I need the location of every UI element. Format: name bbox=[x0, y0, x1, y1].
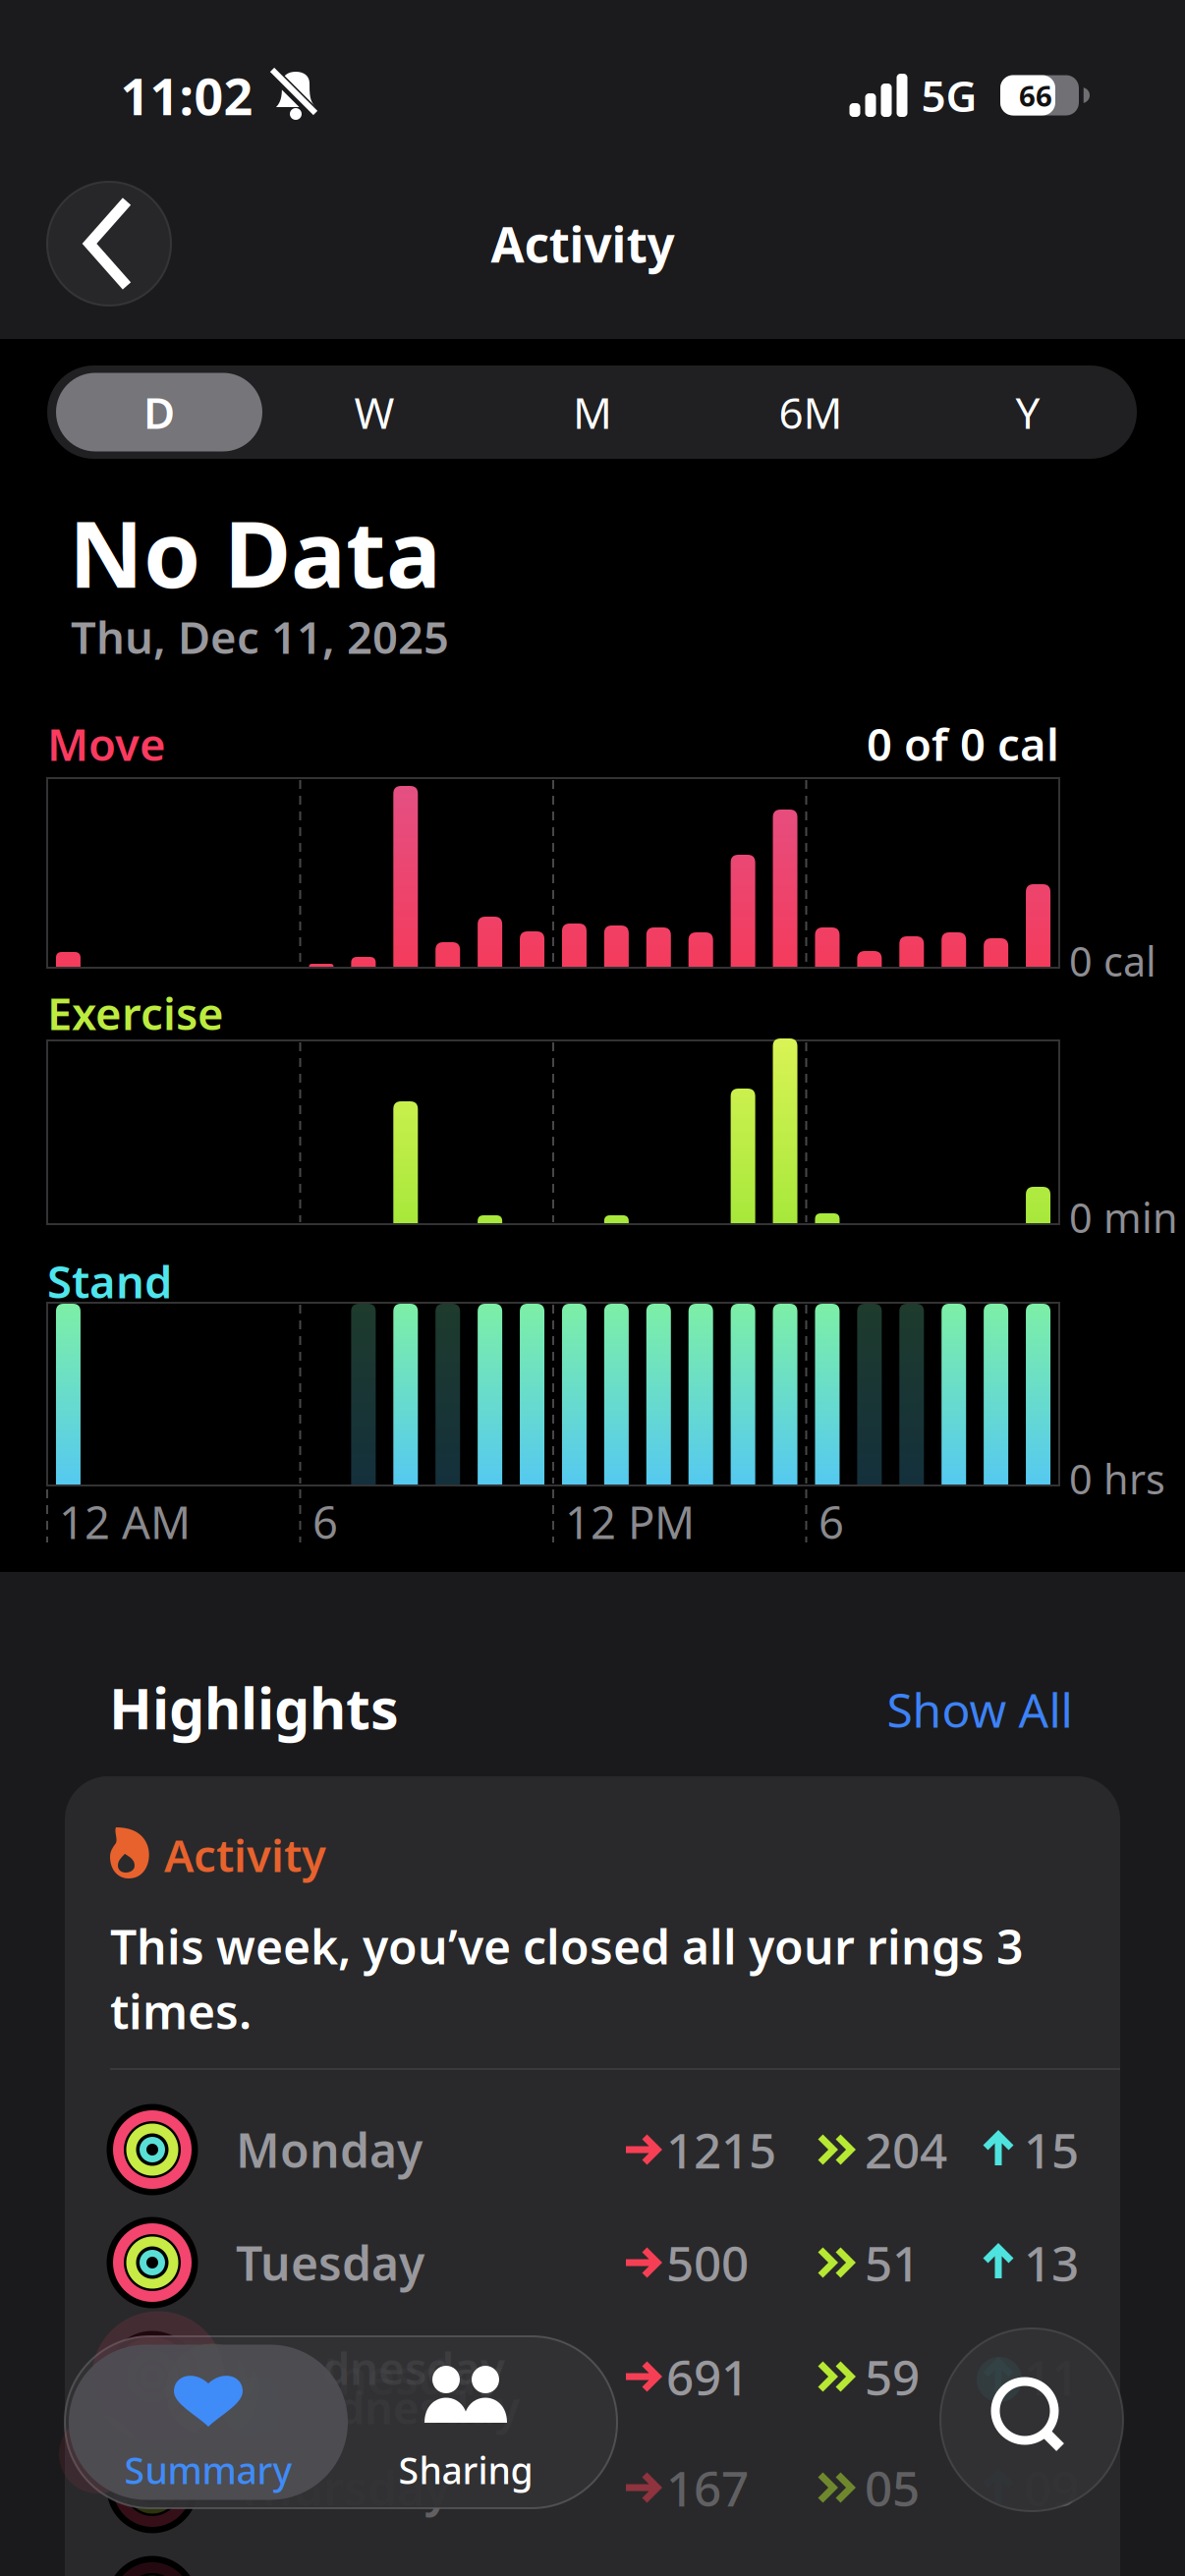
staticText: D bbox=[143, 383, 175, 441]
button[interactable]: Search bbox=[940, 2328, 1123, 2511]
staticText: This week, you’ve closed all your rings … bbox=[110, 1915, 1023, 1977]
staticText: dnesday bbox=[322, 2338, 505, 2397]
staticText: Thu, Dec 11, 2025 bbox=[71, 607, 449, 666]
button[interactable]: D bbox=[56, 373, 262, 451]
staticText: 59 bbox=[865, 2344, 920, 2409]
staticText: Move bbox=[47, 714, 166, 773]
staticText: Highlights bbox=[109, 1670, 399, 1745]
button[interactable]: M bbox=[489, 368, 696, 456]
button[interactable]: Show All bbox=[887, 1678, 1072, 1741]
button[interactable]: W bbox=[271, 368, 478, 456]
staticText: 6 bbox=[818, 1492, 844, 1551]
staticText: 51 bbox=[865, 2230, 920, 2295]
staticText: 1215 bbox=[666, 2117, 776, 2182]
staticText: 66 bbox=[1019, 76, 1052, 114]
button[interactable]: 6M bbox=[707, 368, 914, 456]
button[interactable]: Summary bbox=[72, 2348, 345, 2497]
staticText: 12 AM bbox=[59, 1492, 191, 1551]
staticText: 691 bbox=[666, 2344, 749, 2409]
staticText: 5G bbox=[921, 67, 977, 124]
staticText: 0 hrs bbox=[1069, 1452, 1165, 1506]
staticText: M bbox=[573, 383, 612, 441]
button[interactable]: Back bbox=[47, 182, 171, 306]
staticText: Y bbox=[1016, 383, 1040, 441]
staticText: 11 bbox=[1024, 2344, 1079, 2409]
staticText: Wednesday bbox=[236, 2345, 501, 2408]
staticText: Sharing bbox=[398, 2446, 533, 2494]
staticText: No Data bbox=[69, 491, 441, 613]
staticText: 0 of 0 cal bbox=[867, 714, 1059, 773]
button[interactable]: Sharing bbox=[329, 2348, 602, 2497]
staticText: 15 bbox=[1024, 2117, 1079, 2182]
staticText: times. bbox=[110, 1980, 252, 2042]
staticText: 0 cal bbox=[1069, 934, 1157, 988]
staticText: Summary bbox=[124, 2446, 292, 2494]
staticText: 13 bbox=[1024, 2230, 1079, 2295]
staticText: Activity bbox=[491, 211, 675, 276]
button[interactable]: Activity highlight bbox=[65, 1776, 1120, 2576]
staticText: 6M bbox=[779, 383, 843, 441]
staticText: 11:02 bbox=[120, 61, 253, 129]
staticText: Activity bbox=[164, 1825, 326, 1884]
staticText: dnesday bbox=[337, 2377, 520, 2437]
staticText: Stand bbox=[47, 1252, 172, 1311]
staticText: 6 bbox=[312, 1492, 338, 1551]
staticText: 12 PM bbox=[565, 1492, 695, 1551]
staticText: 204 bbox=[865, 2117, 947, 2182]
staticText: Monday bbox=[236, 2118, 423, 2181]
staticText: 167 bbox=[666, 2455, 749, 2520]
button[interactable]: Y bbox=[925, 368, 1131, 456]
staticText: 09 bbox=[1024, 2455, 1079, 2520]
staticText: 05 bbox=[865, 2455, 920, 2520]
staticText: W bbox=[354, 383, 395, 441]
staticText: Thursday bbox=[236, 2456, 450, 2519]
staticText: Tuesday bbox=[236, 2231, 424, 2294]
staticText: 0 min bbox=[1069, 1190, 1178, 1244]
staticText: Show All bbox=[887, 1678, 1072, 1741]
staticText: 500 bbox=[666, 2230, 749, 2295]
staticText: Exercise bbox=[47, 983, 224, 1042]
